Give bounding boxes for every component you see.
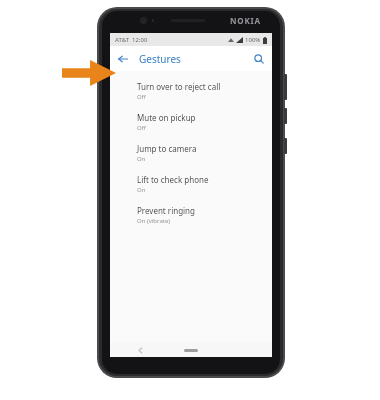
button[interactable]: Prevent ringing bbox=[110, 201, 272, 232]
staticText: Off bbox=[137, 93, 146, 101]
staticText: Mute on pickup bbox=[137, 112, 196, 123]
button[interactable]: Turn over to reject call bbox=[110, 77, 272, 108]
button[interactable]: Back bbox=[134, 344, 146, 356]
staticText: Off bbox=[137, 124, 146, 132]
button[interactable]: Search bbox=[250, 50, 268, 68]
staticText: Lift to check phone bbox=[137, 174, 209, 185]
button[interactable]: Mute on pickup bbox=[110, 108, 272, 139]
staticText: On (vibrate) bbox=[137, 217, 171, 225]
staticText: Prevent ringing bbox=[137, 205, 195, 216]
staticText: Jump to camera bbox=[137, 143, 197, 154]
staticText: Turn over to reject call bbox=[137, 81, 221, 92]
staticText: AT&T 12:00 bbox=[115, 36, 148, 44]
staticText: NOKIA bbox=[230, 15, 261, 26]
staticText: On bbox=[137, 155, 146, 163]
staticText: 100% bbox=[245, 36, 261, 44]
staticText: Gestures bbox=[139, 52, 181, 66]
button[interactable]: Home bbox=[180, 344, 202, 356]
button[interactable]: Jump to camera bbox=[110, 139, 272, 170]
button[interactable]: Lift to check phone bbox=[110, 170, 272, 201]
staticText: On bbox=[137, 186, 146, 194]
button[interactable]: Back bbox=[113, 49, 133, 69]
